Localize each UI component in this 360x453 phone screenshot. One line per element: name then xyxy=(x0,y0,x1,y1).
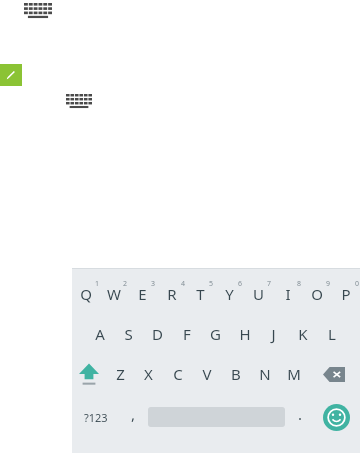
staticText: R xyxy=(167,284,177,304)
button[interactable]: E xyxy=(128,274,157,314)
staticText: M xyxy=(287,364,301,384)
button[interactable]: U xyxy=(244,274,273,314)
button[interactable]: P xyxy=(331,274,360,314)
staticText: D xyxy=(152,324,163,344)
staticText: N xyxy=(259,364,271,384)
button[interactable]: M xyxy=(279,354,308,394)
staticText: Y xyxy=(225,284,234,304)
button[interactable]: Q xyxy=(72,274,100,314)
button[interactable]: Y xyxy=(215,274,244,314)
staticText: A xyxy=(95,324,105,344)
button[interactable]: S xyxy=(114,314,143,354)
button[interactable]: V xyxy=(192,354,221,394)
staticText: F xyxy=(183,324,191,344)
staticText: 3 xyxy=(151,279,156,289)
staticText: H xyxy=(239,324,251,344)
staticText: 5 xyxy=(209,279,214,289)
button[interactable]: O xyxy=(302,274,331,314)
button[interactable]: Emoji xyxy=(313,394,360,440)
staticText: 9 xyxy=(326,279,331,289)
staticText: . xyxy=(298,404,303,424)
staticText: W xyxy=(107,284,121,304)
button[interactable]: N xyxy=(250,354,279,394)
staticText: I xyxy=(285,284,291,304)
button[interactable]: Shift xyxy=(72,354,106,394)
staticText: L xyxy=(328,324,336,344)
button[interactable]: A xyxy=(85,314,114,354)
staticText: 4 xyxy=(181,279,186,289)
staticText: B xyxy=(231,364,241,384)
staticText: ?123 xyxy=(84,410,108,425)
staticText: 0 xyxy=(355,279,360,289)
staticText: U xyxy=(253,284,264,304)
staticText: J xyxy=(271,324,276,344)
staticText: T xyxy=(196,284,205,304)
button[interactable]: Keyboard xyxy=(24,3,52,18)
staticText: 8 xyxy=(297,279,302,289)
button[interactable]: J xyxy=(259,314,288,354)
button[interactable]: D xyxy=(143,314,172,354)
button[interactable]: R xyxy=(157,274,186,314)
staticText: P xyxy=(341,284,351,304)
staticText: 6 xyxy=(238,279,243,289)
button[interactable]: G xyxy=(201,314,230,354)
staticText: S xyxy=(124,324,133,344)
staticText: Q xyxy=(80,284,92,304)
staticText: 7 xyxy=(267,279,272,289)
button[interactable]: Edit xyxy=(0,64,22,86)
button[interactable]: . xyxy=(287,394,313,440)
button[interactable]: ?123 xyxy=(72,394,120,440)
staticText: Z xyxy=(116,364,125,384)
button[interactable]: Keyboard xyxy=(66,94,92,108)
button[interactable]: T xyxy=(186,274,215,314)
button[interactable]: C xyxy=(163,354,192,394)
button[interactable]: , xyxy=(120,394,146,440)
staticText: , xyxy=(131,404,136,424)
staticText: G xyxy=(210,324,221,344)
staticText: E xyxy=(138,284,147,304)
button[interactable]: H xyxy=(230,314,259,354)
staticText: 2 xyxy=(123,279,128,289)
button[interactable]: Backspace xyxy=(308,354,360,394)
button[interactable]: Z xyxy=(106,354,134,394)
button[interactable]: W xyxy=(100,274,128,314)
button[interactable]: F xyxy=(172,314,201,354)
staticText: K xyxy=(298,324,308,344)
staticText: X xyxy=(144,364,153,384)
button[interactable]: X xyxy=(134,354,163,394)
staticText: V xyxy=(202,364,212,384)
staticText: C xyxy=(173,364,183,384)
staticText: 1 xyxy=(95,279,100,289)
button[interactable]: L xyxy=(317,314,346,354)
button[interactable]: K xyxy=(288,314,317,354)
button[interactable]: B xyxy=(221,354,250,394)
button[interactable]: I xyxy=(273,274,302,314)
staticText: O xyxy=(311,284,323,304)
